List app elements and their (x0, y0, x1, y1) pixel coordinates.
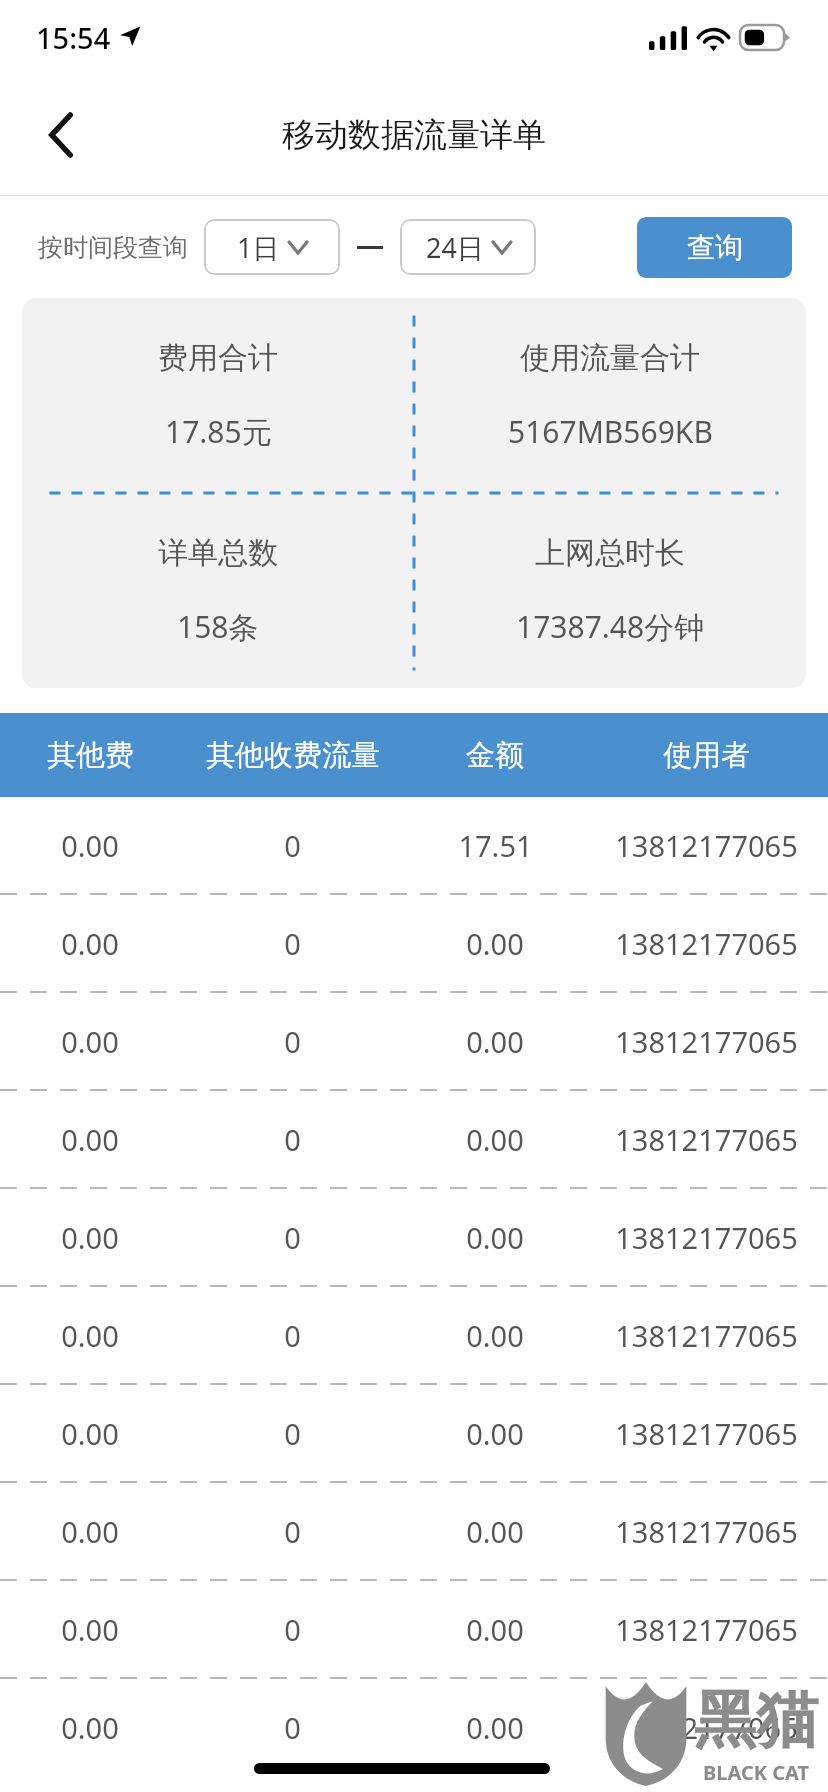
staticText: 使用者 (663, 737, 750, 774)
staticText: 0.00 (61, 924, 119, 963)
staticText: 0 (284, 1218, 301, 1257)
button[interactable]: 0.00 (0, 1385, 828, 1481)
staticText: 0.00 (61, 1708, 119, 1747)
button[interactable]: 查询 (637, 217, 792, 278)
button[interactable]: 0.00 (0, 1581, 828, 1677)
staticText: 其他费 (47, 737, 134, 774)
staticText: 0.00 (466, 1120, 524, 1159)
staticText: 0 (284, 924, 301, 963)
button[interactable]: 0.00 (0, 1091, 828, 1187)
staticText: 金额 (466, 737, 524, 774)
button[interactable]: 0.00 (0, 1189, 828, 1285)
button[interactable]: 1日 (204, 219, 340, 275)
staticText: 0.00 (466, 1708, 524, 1747)
staticText: 0 (284, 1414, 301, 1453)
staticText: 0 (284, 1022, 301, 1061)
staticText: 13812177065 (615, 1708, 798, 1747)
staticText: 0.00 (61, 1414, 119, 1453)
staticText: 0 (284, 826, 301, 865)
staticText: 5167MB569KB (508, 411, 713, 452)
staticText: 0.00 (466, 1218, 524, 1257)
staticText: 0.00 (61, 1120, 119, 1159)
staticText: 0 (284, 1708, 301, 1747)
staticText: 0.00 (61, 1218, 119, 1257)
staticText: 0.00 (466, 1022, 524, 1061)
staticText: 13812177065 (615, 1022, 798, 1061)
button[interactable]: 0.00 (0, 993, 828, 1089)
staticText: 13812177065 (615, 924, 798, 963)
staticText: 15:54 (36, 18, 111, 57)
button[interactable]: 0.00 (0, 895, 828, 991)
staticText: 0.00 (61, 1512, 119, 1551)
staticText: 13812177065 (615, 1610, 798, 1649)
staticText: 移动数据流量详单 (282, 114, 546, 156)
button[interactable]: 0.00 (0, 797, 828, 893)
staticText: 13812177065 (615, 1512, 798, 1551)
staticText: 17.85元 (165, 411, 272, 452)
staticText: 查询 (687, 230, 743, 265)
staticText: 17.51 (458, 826, 533, 865)
staticText: 0.00 (61, 1316, 119, 1355)
staticText: 0 (284, 1316, 301, 1355)
staticText: 0 (284, 1120, 301, 1159)
staticText: 0.00 (61, 1022, 119, 1061)
staticText: 0 (284, 1512, 301, 1551)
staticText: 13812177065 (615, 1316, 798, 1355)
staticText: 0.00 (61, 1610, 119, 1649)
staticText: 0.00 (466, 1512, 524, 1551)
staticText: 其他收费流量 (206, 737, 380, 774)
staticText: 13812177065 (615, 826, 798, 865)
staticText: 按时间段查询 (38, 232, 188, 263)
staticText: 0.00 (61, 826, 119, 865)
staticText: 0.00 (466, 1316, 524, 1355)
staticText: 158条 (177, 606, 259, 647)
staticText: 上网总时长 (535, 534, 685, 572)
staticText: 1日 (237, 229, 280, 266)
staticText: 13812177065 (615, 1218, 798, 1257)
staticText: 17387.48分钟 (516, 606, 705, 647)
staticText: 0.00 (466, 1414, 524, 1453)
staticText: 13812177065 (615, 1120, 798, 1159)
staticText: 黑猫 (694, 1681, 818, 1759)
staticText: 0.00 (466, 924, 524, 963)
staticText: 0.00 (466, 1610, 524, 1649)
staticText: 费用合计 (158, 339, 278, 377)
staticText: 13812177065 (615, 1414, 798, 1453)
staticText: BLACK CAT (703, 1759, 810, 1786)
button[interactable]: 0.00 (0, 1679, 828, 1775)
staticText: 0 (284, 1610, 301, 1649)
button[interactable]: 24日 (400, 219, 536, 275)
staticText: 使用流量合计 (520, 339, 700, 377)
staticText: 详单总数 (158, 534, 278, 572)
staticText: 24日 (426, 229, 484, 266)
button[interactable]: Back (30, 104, 92, 166)
button[interactable]: 0.00 (0, 1483, 828, 1579)
button[interactable]: 0.00 (0, 1287, 828, 1383)
